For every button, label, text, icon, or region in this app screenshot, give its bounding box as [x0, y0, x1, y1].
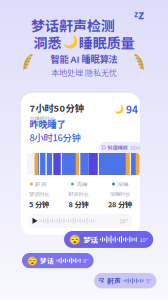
button[interactable]: 😴	[22, 253, 94, 268]
staticText: z	[98, 275, 100, 282]
staticText: 7小时50分钟	[29, 101, 83, 114]
staticText: 5″	[146, 277, 152, 285]
staticText: 8″	[83, 256, 89, 265]
staticText: 总睡眠时长	[29, 114, 54, 122]
staticText: 30m	[129, 144, 140, 151]
staticText: 28 分钟	[108, 199, 132, 209]
staticText: 5 分钟	[29, 199, 49, 209]
staticText: 梦话	[83, 234, 97, 245]
staticText: 深睡时长	[110, 190, 130, 198]
staticText: 10″	[119, 217, 128, 225]
staticText: 🌙	[62, 35, 77, 49]
staticText: 本地处理 隐私无忧	[51, 66, 117, 78]
staticText: 梦话	[40, 256, 54, 265]
staticText: 梦话鼾声检测	[31, 15, 115, 35]
staticText: 智能 AI 睡眠算法	[50, 52, 117, 65]
staticText: 深睡	[117, 180, 129, 188]
staticText: 浅睡	[76, 180, 88, 188]
staticText: z	[138, 5, 144, 23]
staticText: 昨晚睡了	[29, 117, 65, 130]
staticText: 洞悉	[33, 32, 61, 52]
staticText: 94	[126, 102, 138, 116]
button[interactable]: z	[94, 273, 156, 288]
staticText: 鼾声时长	[68, 190, 88, 198]
staticText: z	[100, 274, 104, 284]
staticText: z	[134, 8, 138, 20]
staticText: 梦话时长	[29, 190, 49, 198]
staticText: 10″	[139, 235, 148, 244]
staticText: 8 分钟	[68, 199, 88, 209]
staticText: 睡眠质量	[78, 32, 134, 52]
staticText: 🌙	[114, 105, 124, 114]
button[interactable]: 😴	[64, 231, 153, 248]
staticText: 轻度睡眠	[107, 144, 127, 151]
staticText: 鼾声	[107, 276, 121, 286]
staticText: 😴	[26, 255, 37, 266]
staticText: 8小时16分钟	[29, 130, 80, 144]
staticText: 😴	[69, 234, 81, 245]
staticText: 鼾声	[35, 180, 47, 188]
